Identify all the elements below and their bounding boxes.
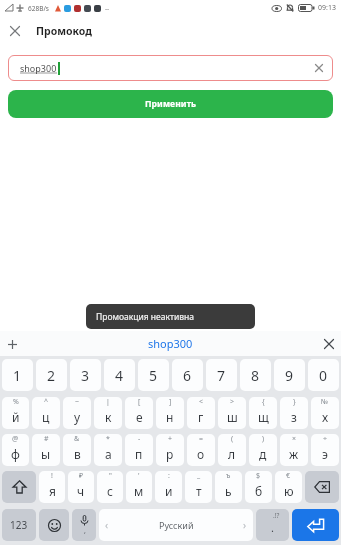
button[interactable]: 7 bbox=[206, 359, 237, 391]
button[interactable]: < bbox=[187, 397, 215, 429]
staticText: к bbox=[105, 409, 112, 425]
button[interactable]: | bbox=[94, 397, 122, 429]
button[interactable] bbox=[2, 471, 36, 503]
button[interactable]: 9 bbox=[274, 359, 305, 391]
button[interactable]: # bbox=[32, 434, 60, 466]
button[interactable]: 1 bbox=[2, 359, 33, 391]
staticText: ÷ bbox=[323, 434, 328, 444]
staticText: и bbox=[165, 483, 173, 499]
staticText: : bbox=[168, 471, 170, 481]
button[interactable]: ^ bbox=[32, 397, 60, 429]
button[interactable]: 6 bbox=[172, 359, 203, 391]
staticText: × bbox=[292, 434, 297, 444]
staticText: б bbox=[255, 483, 263, 499]
button[interactable]: + bbox=[156, 434, 184, 466]
button[interactable]: ) bbox=[249, 434, 277, 466]
button[interactable] bbox=[309, 58, 329, 78]
staticText: 8 bbox=[251, 366, 260, 385]
button[interactable]: % bbox=[2, 397, 29, 429]
button[interactable]: : bbox=[155, 471, 182, 503]
button[interactable]: { bbox=[249, 397, 277, 429]
staticText: Промокод bbox=[36, 24, 92, 38]
staticText: д bbox=[259, 446, 267, 462]
staticText: ^ bbox=[44, 397, 49, 407]
staticText: 09:13 bbox=[318, 3, 336, 13]
staticText: ‹ bbox=[105, 518, 109, 532]
staticText: 3 bbox=[81, 366, 90, 385]
staticText: .!? bbox=[273, 511, 280, 520]
staticText: < bbox=[199, 397, 204, 407]
button[interactable]: & bbox=[63, 434, 91, 466]
staticText: й bbox=[12, 409, 20, 425]
staticText: т bbox=[196, 483, 202, 499]
button[interactable]: 123 bbox=[2, 509, 36, 541]
button[interactable]: [ bbox=[125, 397, 153, 429]
staticText: я bbox=[49, 483, 56, 499]
button[interactable] bbox=[317, 332, 341, 356]
button[interactable]: shop300 bbox=[8, 55, 333, 81]
button[interactable]: Русский bbox=[99, 509, 253, 541]
staticText: 7 bbox=[217, 366, 226, 385]
staticText: ы bbox=[41, 446, 51, 462]
button[interactable]: , bbox=[72, 509, 96, 541]
staticText: -- bbox=[105, 4, 110, 13]
button[interactable]: 5 bbox=[138, 359, 169, 391]
button[interactable]: = bbox=[187, 434, 215, 466]
button[interactable]: № bbox=[311, 397, 339, 429]
button[interactable]: ÷ bbox=[311, 434, 339, 466]
staticText: + bbox=[168, 434, 173, 444]
staticText: ь bbox=[225, 483, 232, 499]
button[interactable]: } bbox=[280, 397, 308, 429]
button[interactable]: 3 bbox=[70, 359, 101, 391]
staticText: г bbox=[198, 409, 204, 425]
button[interactable]: € bbox=[275, 471, 302, 503]
button[interactable]: ( bbox=[218, 434, 246, 466]
button[interactable] bbox=[292, 509, 339, 541]
staticText: ( bbox=[231, 434, 234, 444]
staticText: | bbox=[106, 397, 110, 407]
button[interactable]: ъ bbox=[215, 471, 242, 503]
staticText: @ bbox=[12, 434, 19, 444]
staticText: 4 bbox=[115, 366, 124, 385]
button[interactable]: Применить bbox=[8, 90, 333, 118]
staticText: , bbox=[84, 526, 86, 536]
button[interactable]: ₽ bbox=[68, 471, 94, 503]
staticText: ) bbox=[262, 434, 265, 444]
button[interactable] bbox=[0, 332, 24, 356]
button[interactable] bbox=[0, 16, 30, 46]
button[interactable]: " bbox=[97, 471, 123, 503]
button[interactable]: shop300 bbox=[148, 336, 193, 351]
staticText: э bbox=[322, 446, 328, 462]
button[interactable]: 2 bbox=[36, 359, 67, 391]
staticText: € bbox=[286, 471, 291, 481]
staticText: № bbox=[321, 397, 329, 407]
button[interactable]: * bbox=[94, 434, 122, 466]
button[interactable]: .!? bbox=[256, 509, 289, 541]
staticText: shop300 bbox=[20, 62, 57, 74]
button[interactable] bbox=[305, 471, 339, 503]
staticText: а bbox=[105, 446, 112, 462]
staticText: ~ bbox=[75, 397, 80, 407]
button[interactable]: @ bbox=[2, 434, 29, 466]
button[interactable]: ~ bbox=[63, 397, 91, 429]
button[interactable]: ] bbox=[156, 397, 184, 429]
staticText: ъ bbox=[226, 471, 231, 481]
staticText: [ bbox=[138, 397, 141, 407]
staticText: Промоакция неактивна bbox=[96, 311, 194, 323]
staticText: * bbox=[106, 434, 110, 444]
button[interactable]: $ bbox=[245, 471, 272, 503]
staticText: # bbox=[44, 434, 49, 444]
button[interactable]: > bbox=[218, 397, 246, 429]
button[interactable]: ' bbox=[126, 471, 152, 503]
button[interactable]: ! bbox=[39, 471, 65, 503]
button[interactable] bbox=[39, 509, 69, 541]
button[interactable]: 0 bbox=[308, 359, 339, 391]
button[interactable]: 8 bbox=[240, 359, 271, 391]
staticText: 2 bbox=[47, 366, 56, 385]
button[interactable]: × bbox=[280, 434, 308, 466]
button[interactable]: _ bbox=[185, 471, 212, 503]
button[interactable]: 4 bbox=[104, 359, 135, 391]
staticText: 628B/s bbox=[28, 4, 49, 13]
button[interactable]: - bbox=[125, 434, 153, 466]
staticText: 1 bbox=[13, 366, 22, 385]
